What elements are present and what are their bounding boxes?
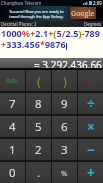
staticText: Chunghwa Telecom — [1, 0, 42, 6]
staticText: Adv. — [6, 76, 19, 85]
staticText: C — [87, 74, 94, 88]
staticText: 7 — [9, 96, 16, 112]
button[interactable]: Decimal Places: 2 — [0, 21, 37, 27]
staticText: ) — [63, 72, 67, 90]
button[interactable]: + — [78, 162, 103, 183]
staticText: Google — [71, 8, 95, 18]
button[interactable]: × — [78, 116, 103, 137]
staticText: 2:09 — [93, 0, 102, 6]
staticText: 2 — [35, 142, 42, 158]
staticText: = 3,292,436.66 — [34, 58, 102, 68]
button[interactable]: 1 — [0, 139, 25, 160]
staticText: 1000%+2.1+(5/2.5)-789 +333.456*9876 — [1, 27, 100, 51]
staticText: Success! Now you are ready to travel thr… — [9, 9, 64, 19]
button[interactable]: 2 — [26, 139, 51, 160]
staticText: − — [87, 141, 95, 159]
button[interactable]: ÷ — [78, 93, 103, 114]
button[interactable]: 6 — [52, 116, 77, 137]
staticText: . — [37, 165, 41, 181]
staticText: 1 — [9, 142, 16, 158]
button[interactable]: ) — [52, 70, 77, 91]
staticText: ( — [37, 72, 41, 90]
staticText: 9 — [61, 96, 68, 112]
button[interactable]: Adv. — [0, 70, 25, 91]
button[interactable]: 4 — [0, 116, 25, 137]
button[interactable]: 7 — [0, 93, 25, 114]
staticText: 5 — [35, 119, 42, 135]
button[interactable]: C — [78, 70, 103, 91]
staticText: × — [87, 118, 95, 136]
staticText: + — [87, 164, 95, 182]
button[interactable]: 3 — [52, 139, 77, 160]
staticText: 8 — [35, 96, 42, 112]
staticText: % — [61, 168, 68, 178]
button[interactable]: 8 — [26, 93, 51, 114]
button[interactable]: ( — [26, 70, 51, 91]
staticText: 3 — [61, 142, 68, 158]
staticText: ÷ — [87, 95, 95, 113]
button[interactable]: 9 — [52, 93, 77, 114]
staticText: 4 — [9, 119, 16, 135]
staticText: 6 — [61, 119, 68, 135]
button[interactable]: Degrees — [84, 21, 103, 27]
button[interactable]: 5 — [26, 116, 51, 137]
button[interactable]: − — [78, 139, 103, 160]
button[interactable]: . — [26, 162, 51, 183]
button[interactable]: 0 — [0, 162, 25, 183]
button[interactable]: Success! Now you are ready to travel thr… — [0, 6, 103, 21]
button[interactable]: % — [52, 162, 77, 183]
staticText: 0 — [9, 165, 16, 181]
